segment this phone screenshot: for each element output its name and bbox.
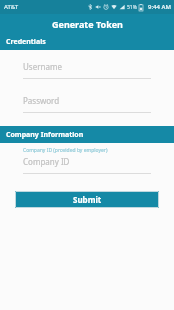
button[interactable]: Company ID (23, 156, 151, 174)
staticText: Username (23, 61, 62, 72)
staticText: Password (23, 95, 60, 106)
staticText: 9:44 AM (148, 3, 171, 11)
staticText: 51% (127, 4, 137, 11)
staticText: Company ID (provided by employer) (23, 147, 108, 154)
staticText: AT&T (4, 3, 19, 11)
staticText: Credentials (6, 37, 46, 47)
staticText: Company Information (6, 130, 84, 140)
button[interactable]: Submit (15, 191, 159, 208)
staticText: Submit (73, 194, 102, 205)
staticText: Company ID (23, 156, 70, 167)
staticText: Generate Token (52, 18, 123, 30)
button[interactable]: Username (23, 61, 151, 79)
button[interactable]: Password (23, 95, 151, 113)
